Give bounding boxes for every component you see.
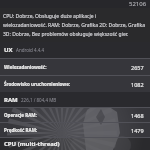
button[interactable]: UX: [0, 42, 150, 58]
staticText: 2657: [131, 64, 144, 71]
button[interactable]: CPU (multi-thread): [0, 138, 150, 150]
staticText: 1082: [131, 81, 144, 88]
button[interactable]: Prędkość RAM:: [0, 123, 150, 137]
staticText: UX: [4, 46, 13, 54]
staticText: Wielozadaniowość:: [4, 64, 47, 70]
staticText: CPU: Dobrze, Obsługuje duże aplikacje i …: [3, 13, 146, 38]
staticText: RAM: [4, 96, 18, 104]
staticText: 1468: [131, 112, 144, 119]
button[interactable]: RAM: [0, 92, 150, 107]
staticText: Prędkość RAM:: [4, 127, 38, 133]
staticText: Android 4.4.4: [16, 47, 45, 53]
staticText: 1479: [131, 127, 144, 134]
button[interactable]: Środowisko uruchomieniowe:: [0, 76, 150, 92]
staticText: 52106: [129, 0, 147, 8]
staticText: CPU (multi-thread): [4, 140, 60, 148]
staticText: 226,1 / 804,4 MB: [21, 97, 57, 103]
button[interactable]: Operacje RAM:: [0, 108, 150, 122]
staticText: Operacje RAM:: [4, 112, 37, 118]
staticText: Środowisko uruchomieniowe:: [4, 81, 71, 87]
button[interactable]: Wielozadaniowość:: [0, 59, 150, 75]
